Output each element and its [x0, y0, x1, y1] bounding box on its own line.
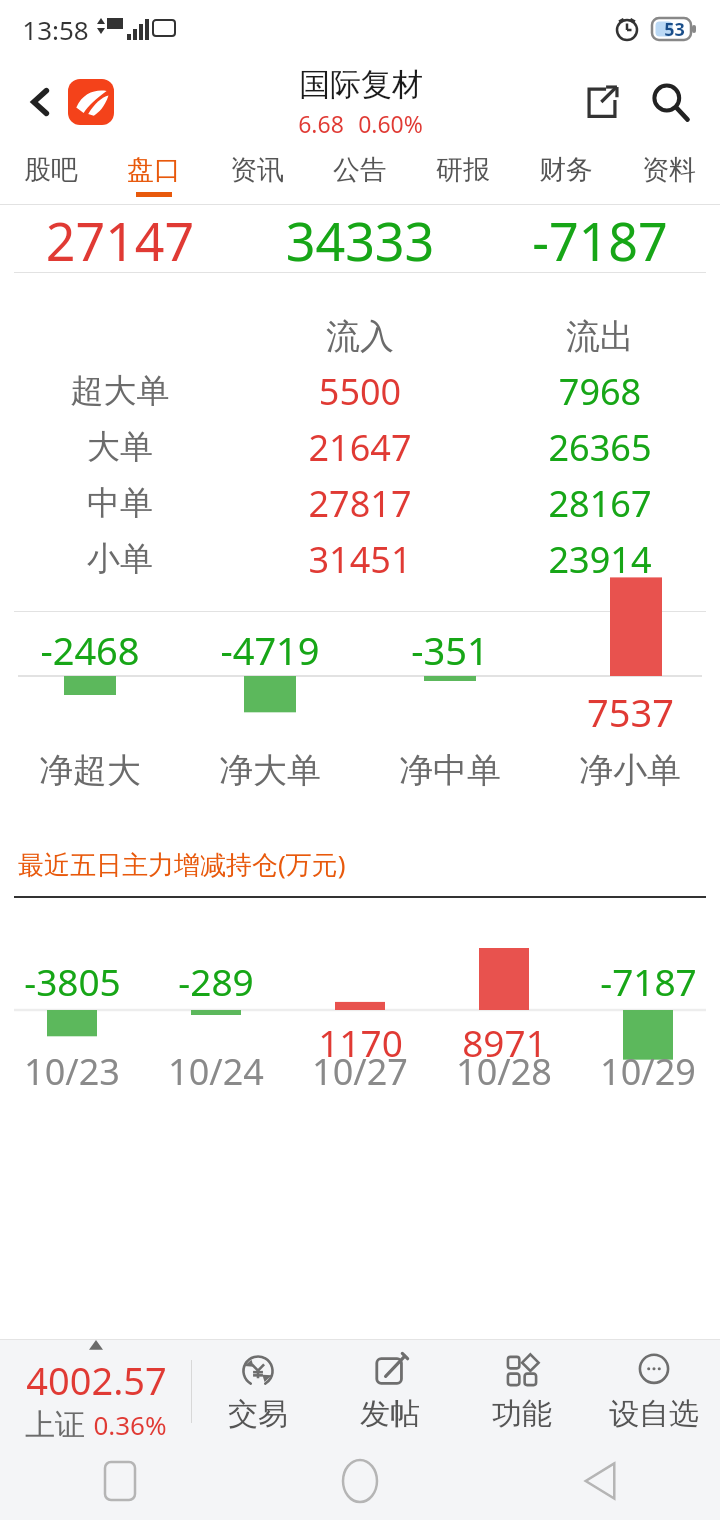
staticText: 0.60% [358, 108, 423, 139]
staticText: 净中单 [360, 749, 540, 792]
staticText: 超大单 [0, 370, 240, 412]
button[interactable]: 设自选 [588, 1340, 720, 1442]
staticText: -2468 [40, 624, 140, 676]
staticText: 26365 [480, 423, 720, 472]
staticText: 国际复材 [299, 65, 423, 104]
button[interactable]: 交易 [192, 1340, 324, 1442]
staticText: 10/23 [0, 1047, 144, 1096]
staticText: 最近五日主力增减持仓(万元) [18, 846, 346, 882]
staticText: 5500 [240, 367, 480, 416]
staticText: 财务 [539, 153, 593, 187]
button[interactable]: 发帖 [324, 1340, 456, 1442]
staticText: -7187 [480, 205, 720, 265]
staticText: -4719 [220, 624, 320, 676]
staticText: 6.68 [298, 108, 344, 139]
staticText: 10/24 [144, 1047, 288, 1096]
staticText: 上证 [25, 1406, 85, 1442]
button[interactable]: 功能 [456, 1340, 588, 1442]
staticText: -3805 [24, 956, 121, 1006]
staticText: 功能 [492, 1395, 552, 1433]
staticText: 4002.57 [26, 1354, 167, 1406]
staticText: 小单 [0, 538, 240, 580]
staticText: 资料 [642, 153, 696, 187]
staticText: 27817 [240, 479, 480, 528]
button[interactable]: App logo [68, 79, 114, 125]
button[interactable]: Share [574, 74, 630, 130]
staticText: 0.36% [93, 1407, 167, 1442]
staticText: 34333 [240, 205, 480, 265]
staticText: 10/27 [288, 1047, 432, 1096]
staticText: 流出 [480, 315, 720, 358]
staticText: -351 [411, 624, 489, 676]
staticText: -7187 [600, 956, 697, 1006]
staticText: 31451 [240, 535, 480, 584]
staticText: 净超大 [0, 749, 180, 792]
button[interactable]: 4002.57 [0, 1340, 192, 1442]
button[interactable]: 财务 [514, 146, 617, 204]
staticText: 23914 [480, 535, 720, 584]
staticText: 13:58 [22, 12, 89, 47]
staticText: 净小单 [540, 749, 720, 792]
staticText: 28167 [480, 479, 720, 528]
staticText: 10/28 [432, 1047, 576, 1096]
staticText: 中单 [0, 482, 240, 524]
staticText: 盘口 [127, 153, 181, 187]
button[interactable]: Back [14, 75, 68, 129]
staticText: 资讯 [230, 153, 284, 187]
staticText: 8971 [462, 1017, 547, 1067]
staticText: 净大单 [180, 749, 360, 792]
staticText: 10/29 [576, 1047, 720, 1096]
button[interactable]: 股吧 [0, 146, 102, 204]
button[interactable]: Recents [0, 1442, 240, 1520]
staticText: 研报 [436, 153, 490, 187]
staticText: 7537 [587, 686, 674, 738]
button[interactable]: Home [240, 1442, 480, 1520]
staticText: 股吧 [24, 153, 78, 187]
staticText: -289 [178, 956, 254, 1006]
staticText: 27147 [0, 205, 240, 265]
staticText: 设自选 [609, 1395, 699, 1433]
staticText: 大单 [0, 426, 240, 468]
staticText: 1170 [318, 1017, 403, 1067]
staticText: 21647 [240, 423, 480, 472]
button[interactable]: 资讯 [205, 146, 308, 204]
button[interactable]: Back [480, 1442, 720, 1520]
button[interactable]: 研报 [411, 146, 514, 204]
staticText: 发帖 [360, 1395, 420, 1433]
button[interactable]: 公告 [308, 146, 411, 204]
staticText: 公告 [333, 153, 387, 187]
staticText: 交易 [228, 1395, 288, 1433]
button[interactable]: 盘口 [102, 146, 205, 204]
staticText: 53 [664, 17, 685, 42]
button[interactable]: 资料 [617, 146, 720, 204]
staticText: 流入 [240, 315, 480, 358]
button[interactable]: Search [640, 72, 700, 132]
staticText: 7968 [480, 367, 720, 416]
